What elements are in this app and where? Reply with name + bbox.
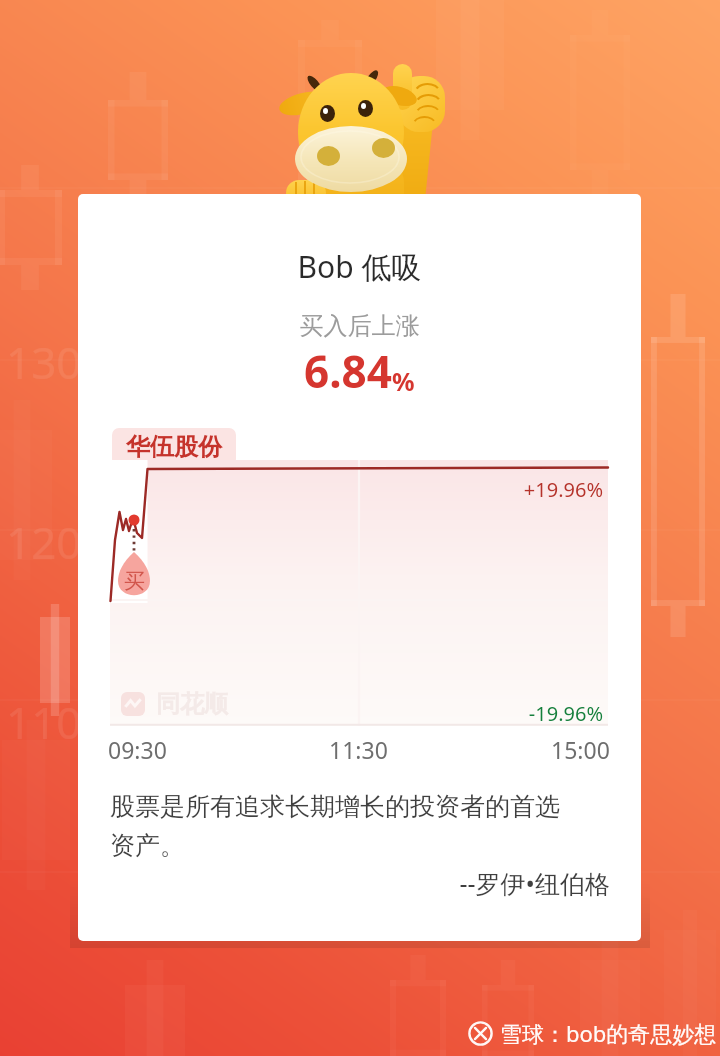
button[interactable]: 华伍股份: [112, 428, 236, 466]
staticText: 股票是所有追求长期增长的投资者的首选资产。: [110, 791, 580, 862]
staticText: 买: [124, 568, 145, 594]
staticText: -19.96%: [110, 700, 603, 727]
staticText: 15:00: [551, 734, 610, 765]
staticText: 120: [6, 512, 82, 572]
staticText: 11:30: [329, 734, 388, 765]
staticText: 买入后上涨: [78, 311, 641, 341]
staticText: +19.96%: [110, 476, 603, 503]
staticText: 6.84: [304, 341, 392, 401]
staticText: 130: [6, 332, 82, 392]
button[interactable]: 华伍股份 intraday price chart: [110, 460, 608, 726]
staticText: --罗伊•纽伯格: [110, 866, 610, 900]
staticText: %: [392, 364, 415, 398]
button[interactable]: Bob 低吸: [78, 194, 641, 941]
button[interactable]: Xueqiu watermark: [468, 1018, 717, 1048]
staticText: 同花顺: [156, 689, 228, 719]
staticText: Bob 低吸: [78, 246, 641, 287]
staticText: 09:30: [108, 734, 167, 765]
staticText: 110: [6, 692, 82, 752]
staticText: 华伍股份: [126, 432, 222, 462]
staticText: 雪球：bob的奇思妙想: [500, 1018, 717, 1048]
